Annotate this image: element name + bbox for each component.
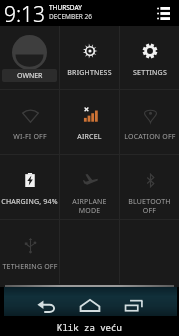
staticText: DECEMBER 26: [49, 12, 92, 21]
button[interactable]: Recents: [122, 293, 146, 317]
staticText: AIRCEL: [77, 132, 102, 142]
staticText: BLUETOOTH OFF: [128, 197, 171, 215]
button[interactable]: AIRCEL: [60, 90, 119, 154]
staticText: WI-FI OFF: [13, 132, 47, 142]
staticText: TETHERING OFF: [2, 262, 58, 272]
button[interactable]: AIRPLANE MODE: [60, 155, 119, 219]
staticText: THURSDAY: [49, 3, 82, 12]
staticText: SETTINGS: [133, 68, 167, 78]
button[interactable]: SETTINGS: [120, 26, 179, 89]
staticText: 9:13: [4, 0, 46, 26]
staticText: BRIGHTNESS: [67, 68, 112, 78]
button[interactable]: BRIGHTNESS: [60, 26, 119, 89]
button[interactable]: Notifications: [152, 2, 174, 24]
button[interactable]: Back: [34, 293, 58, 317]
button[interactable]: BLUETOOTH OFF: [120, 155, 179, 219]
button[interactable]: CHARGING, 94%: [0, 155, 59, 219]
staticText: AIRPLANE MODE: [72, 197, 107, 215]
button[interactable]: Home: [78, 293, 102, 317]
staticText: OWNER: [17, 71, 43, 81]
staticText: Klik za veću: [57, 321, 122, 333]
button[interactable]: LOCATION OFF: [120, 90, 179, 154]
button[interactable]: WI-FI OFF: [0, 90, 59, 154]
button[interactable]: TETHERING OFF: [0, 220, 59, 284]
staticText: CHARGING, 94%: [1, 197, 58, 207]
staticText: LOCATION OFF: [124, 132, 176, 142]
button[interactable]: OWNER: [0, 26, 59, 89]
